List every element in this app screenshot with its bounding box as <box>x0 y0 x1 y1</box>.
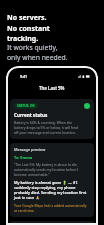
button[interactable] <box>10 221 94 225</box>
staticText: The Last 5% <box>39 85 65 91</box>
button[interactable]: STATUS: OK <box>10 99 94 139</box>
staticText: To: Emma <box>14 155 33 160</box>
button[interactable]: Message preview <box>10 143 94 217</box>
staticText: My battery is almost gone 🔋 — if I sudde… <box>14 180 90 200</box>
staticText: “The Last 5%: My battery is about to die… <box>14 162 90 177</box>
staticText: STATUS: OK <box>17 104 35 108</box>
staticText: It works quietly, only when needed. <box>7 43 68 62</box>
staticText: Message preview <box>14 147 46 152</box>
staticText: 9:41 <box>20 74 28 79</box>
staticText: Current status <box>14 112 48 118</box>
staticText: No servers. No constant tracking. <box>7 13 50 43</box>
staticText: Battery is 64% & counting. When the batt… <box>14 120 82 135</box>
staticText: Your Google Maps link is added automatic… <box>14 203 90 213</box>
